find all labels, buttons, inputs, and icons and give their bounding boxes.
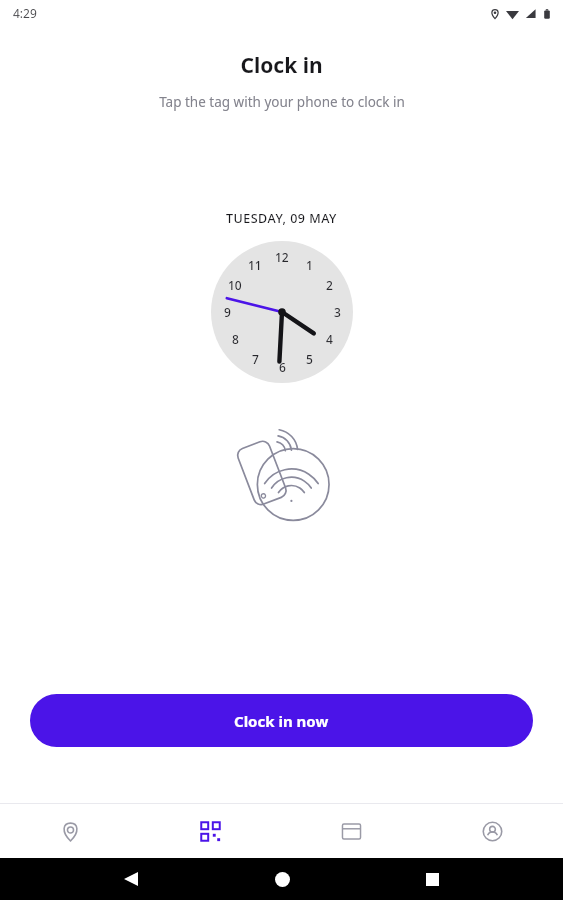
button[interactable]: Home <box>263 860 301 898</box>
staticText: 12 <box>275 249 289 265</box>
staticText: 11 <box>248 257 262 273</box>
staticText: 9 <box>224 304 231 320</box>
staticText: TUESDAY, 09 MAY <box>226 210 337 227</box>
staticText: Clock in now <box>234 711 329 731</box>
staticText: 4:29 <box>13 5 37 21</box>
staticText: 1 <box>306 257 313 273</box>
staticText: 6 <box>279 359 286 375</box>
staticText: 7 <box>252 351 259 367</box>
button[interactable]: Back <box>112 860 150 898</box>
button[interactable]: Scan QR code <box>140 804 281 858</box>
staticText: Clock in <box>240 51 323 80</box>
button[interactable]: Recent apps <box>413 860 451 898</box>
staticText: 4 <box>326 331 333 347</box>
button[interactable]: Cards <box>281 804 422 858</box>
staticText: Tap the tag with your phone to clock in <box>159 93 405 111</box>
staticText: 3 <box>334 304 341 320</box>
button[interactable]: Locations <box>0 804 140 858</box>
button[interactable]: Profile <box>422 804 563 858</box>
staticText: 5 <box>306 351 313 367</box>
staticText: 8 <box>232 331 239 347</box>
staticText: 2 <box>326 277 333 293</box>
button[interactable]: Clock in now <box>30 694 533 747</box>
staticText: 10 <box>228 277 242 293</box>
